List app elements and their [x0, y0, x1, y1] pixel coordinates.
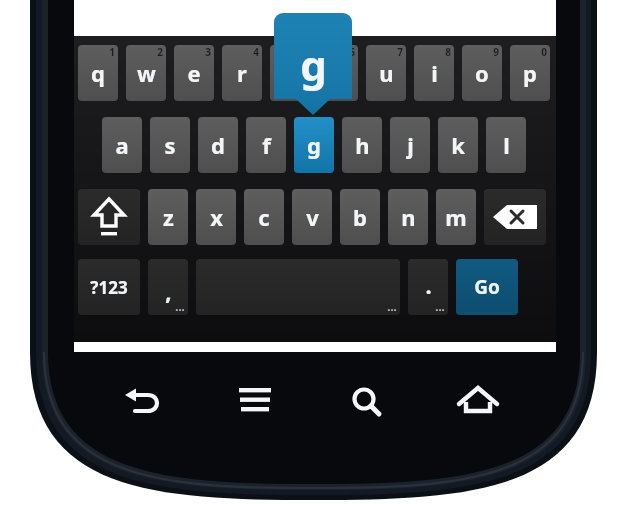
staticText: 3: [205, 45, 211, 59]
staticText: 4: [253, 45, 259, 59]
button[interactable]: a: [102, 117, 142, 173]
button[interactable]: u: [366, 45, 406, 101]
button[interactable]: d: [198, 117, 238, 173]
button[interactable]: r: [222, 45, 262, 101]
button[interactable]: i: [414, 45, 454, 101]
button[interactable]: Go: [456, 259, 518, 315]
button[interactable]: h: [342, 117, 382, 173]
staticText: 0: [541, 45, 547, 59]
staticText: f: [262, 130, 271, 160]
staticText: g: [300, 36, 327, 93]
button[interactable]: b: [340, 189, 380, 245]
button[interactable]: c: [244, 189, 284, 245]
button[interactable]: g: [294, 117, 334, 173]
button[interactable]: q: [78, 45, 118, 101]
button[interactable]: z: [148, 189, 188, 245]
staticText: c: [258, 202, 270, 232]
button[interactable]: l: [486, 117, 526, 173]
button[interactable]: y: [318, 45, 358, 101]
staticText: q: [91, 58, 105, 88]
staticText: m: [445, 202, 467, 232]
staticText: ...: [435, 299, 445, 314]
button[interactable]: Home: [448, 371, 508, 431]
button[interactable]: o: [462, 45, 502, 101]
button[interactable]: m: [436, 189, 476, 245]
staticText: .: [425, 270, 432, 300]
button[interactable]: f: [246, 117, 286, 173]
staticText: n: [401, 202, 416, 232]
button[interactable]: .: [408, 259, 448, 315]
staticText: ?123: [90, 276, 128, 299]
staticText: 9: [493, 45, 499, 59]
staticText: e: [187, 58, 201, 88]
button[interactable]: Shift: [78, 189, 140, 245]
button[interactable]: w: [126, 45, 166, 101]
staticText: x: [210, 202, 223, 232]
button[interactable]: Menu: [225, 371, 285, 431]
staticText: u: [379, 58, 394, 88]
button[interactable]: Search: [336, 371, 396, 431]
staticText: ...: [175, 299, 185, 314]
button[interactable]: ,: [148, 259, 188, 315]
button[interactable]: e: [174, 45, 214, 101]
staticText: a: [115, 130, 129, 160]
button[interactable]: Backspace: [484, 189, 546, 245]
staticText: p: [523, 58, 537, 88]
staticText: w: [137, 58, 156, 88]
button[interactable]: Space: [196, 259, 400, 315]
button[interactable]: s: [150, 117, 190, 173]
staticText: j: [407, 130, 414, 160]
staticText: r: [237, 58, 247, 88]
staticText: k: [451, 130, 465, 160]
button[interactable]: k: [438, 117, 478, 173]
staticText: o: [475, 58, 489, 88]
staticText: z: [163, 202, 174, 232]
staticText: 7: [397, 45, 403, 59]
staticText: 2: [157, 45, 163, 59]
button[interactable]: v: [292, 189, 332, 245]
button[interactable]: x: [196, 189, 236, 245]
staticText: i: [431, 58, 438, 88]
staticText: 1: [109, 45, 115, 59]
staticText: v: [306, 202, 319, 232]
button[interactable]: n: [388, 189, 428, 245]
staticText: 8: [445, 45, 451, 59]
button[interactable]: p: [510, 45, 550, 101]
staticText: d: [211, 130, 225, 160]
staticText: ...: [387, 299, 397, 314]
staticText: 6: [349, 45, 355, 59]
staticText: Go: [474, 274, 500, 300]
staticText: g: [307, 130, 321, 160]
button[interactable]: j: [390, 117, 430, 173]
button[interactable]: Back: [113, 371, 173, 431]
staticText: h: [355, 130, 370, 160]
button[interactable]: ?123: [78, 259, 140, 315]
staticText: l: [503, 130, 510, 160]
staticText: ,: [165, 276, 172, 306]
button[interactable]: t: [270, 45, 310, 101]
staticText: s: [164, 130, 176, 160]
staticText: b: [353, 202, 367, 232]
